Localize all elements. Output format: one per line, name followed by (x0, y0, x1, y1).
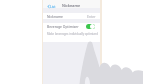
button[interactable]: Beverage Optimizer toggle (86, 24, 95, 29)
staticText: Make beverages individually optimized (47, 32, 98, 36)
staticText: Beverage Optimizer (47, 24, 79, 29)
staticText: Nickname (62, 3, 81, 8)
staticText: List (50, 4, 56, 8)
button[interactable]: Nickname (43, 13, 100, 19)
staticText: Enter (87, 14, 96, 19)
staticText: Nickname (47, 14, 63, 19)
button[interactable]: List (47, 4, 56, 8)
